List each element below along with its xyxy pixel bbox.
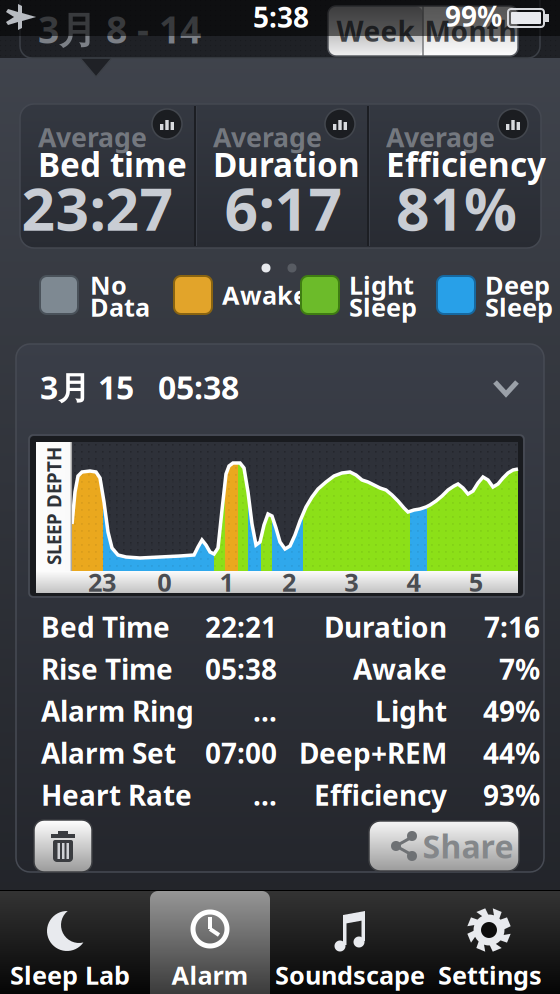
staticText: Month (424, 12, 516, 50)
staticText: Alarm (171, 958, 248, 992)
staticText: 7% (499, 650, 540, 688)
staticText: Duration (213, 142, 360, 186)
staticText: 6:17 (224, 169, 342, 247)
staticText: Settings (438, 958, 542, 992)
staticText: Rise Time (41, 650, 173, 688)
staticText: Sleep (349, 290, 417, 324)
staticText: 5 (469, 565, 483, 599)
staticText: Awake (222, 278, 308, 312)
staticText: 4 (406, 565, 420, 599)
staticText: ... (253, 776, 277, 814)
staticText: Heart Rate (41, 776, 192, 814)
button[interactable]: Settings (420, 890, 560, 994)
button[interactable]: Sleep Lab (0, 890, 140, 994)
staticText: Soundscape (275, 958, 425, 992)
staticText: 23 (88, 565, 116, 599)
staticText: 93% (483, 776, 540, 814)
button[interactable]: Share (369, 821, 519, 871)
staticText: 99% (445, 0, 502, 35)
staticText: 1 (220, 565, 234, 599)
staticText: 3月 8 - 14 (38, 4, 201, 54)
staticText: Sleep (485, 290, 553, 324)
staticText: Week (336, 12, 414, 50)
staticText: Bed Time (41, 608, 170, 646)
staticText: Bed time (38, 142, 187, 186)
button[interactable]: Week (328, 6, 422, 56)
staticText: 81% (396, 169, 517, 247)
staticText: 2 (282, 565, 296, 599)
button[interactable]: Soundscape (280, 890, 420, 994)
staticText: 3 (344, 565, 358, 599)
staticText: Awake (353, 650, 447, 688)
staticText: 44% (483, 734, 540, 772)
staticText: Sleep Lab (10, 958, 130, 992)
staticText: 0 (157, 565, 171, 599)
staticText: Efficiency (314, 776, 447, 814)
staticText: Light (349, 268, 414, 302)
staticText: Alarm Set (41, 734, 176, 772)
button[interactable]: Month (423, 6, 517, 56)
staticText: 22:21 (205, 608, 277, 646)
staticText: 5:38 (253, 0, 309, 36)
staticText: 23:27 (21, 169, 173, 247)
staticText: Average (386, 119, 495, 155)
staticText: SLEEP DEPTH (0, 494, 113, 518)
staticText: Efficiency (386, 142, 546, 186)
staticText: ... (253, 692, 277, 730)
staticText: 3月 15 05:38 (40, 366, 239, 408)
staticText: 05:38 (205, 650, 277, 688)
staticText: No (90, 268, 127, 302)
staticText: 7:16 (484, 608, 540, 646)
staticText: Average (213, 119, 322, 155)
staticText: Deep+REM (299, 734, 447, 772)
staticText: Average (38, 119, 147, 155)
staticText: 49% (483, 692, 540, 730)
button[interactable]: Average (195, 104, 368, 248)
button[interactable]: Average (20, 104, 195, 248)
staticText: Deep (485, 268, 550, 302)
button[interactable]: Delete (34, 820, 92, 872)
button[interactable]: Alarm (140, 890, 280, 994)
staticText: Alarm Ring (41, 692, 194, 730)
staticText: Data (90, 290, 150, 324)
staticText: Share (422, 825, 513, 867)
button[interactable]: Average (368, 104, 541, 248)
staticText: 07:00 (205, 734, 277, 772)
button[interactable]: 3月 15 05:38 (18, 365, 542, 409)
staticText: Duration (324, 608, 447, 646)
staticText: Light (375, 692, 447, 730)
